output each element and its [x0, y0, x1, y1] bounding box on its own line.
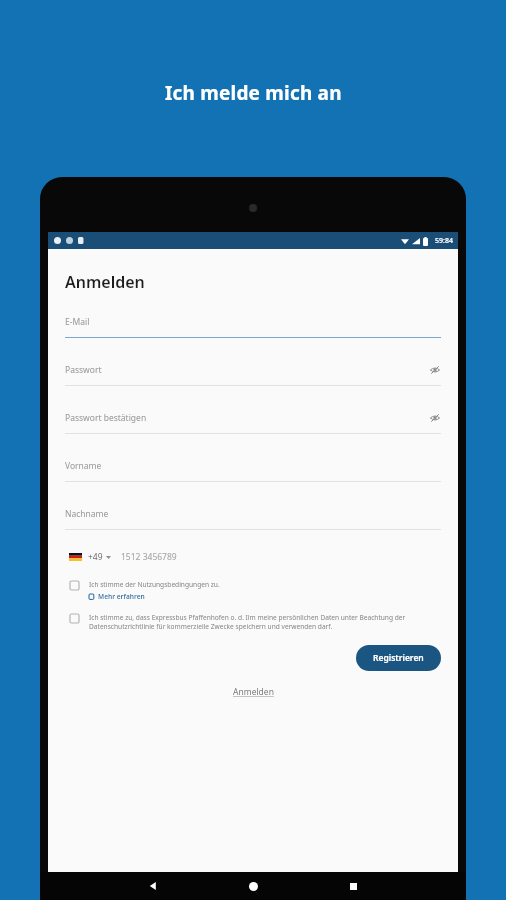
staticText: Mehr erfahren	[98, 592, 145, 601]
staticText: Anmelden	[65, 271, 145, 293]
button[interactable]: Vorname	[65, 460, 441, 482]
button[interactable]: +49	[65, 551, 441, 563]
button[interactable]: Übersicht	[303, 872, 403, 900]
staticText: Anmelden	[233, 686, 274, 698]
staticText: 59:84	[435, 236, 453, 246]
button[interactable]: Zustimmen	[65, 613, 441, 631]
button[interactable]: Zustimmen	[65, 580, 441, 601]
staticText: Passwort	[65, 364, 102, 376]
button[interactable]: Zurück	[103, 872, 203, 900]
staticText: Ich melde mich an	[165, 80, 342, 106]
staticText: Ich stimme der Nutzungsbedingungen zu.	[89, 580, 220, 589]
staticText: E-Mail	[65, 316, 90, 328]
staticText: 1512 3456789	[121, 551, 177, 563]
button[interactable]: Nachname	[65, 508, 441, 530]
button[interactable]: E-Mail	[65, 316, 441, 338]
button[interactable]: Anmelden	[227, 683, 280, 701]
button[interactable]: Registrieren	[356, 645, 441, 671]
staticText: Datenschutzrichtlinie für kommerzielle Z…	[89, 622, 333, 631]
button[interactable]: Passwort bestätigen	[65, 412, 441, 434]
other: Zustimmen	[70, 614, 79, 623]
staticText: Nachname	[65, 508, 109, 520]
staticText: Ich stimme zu, dass Expressbus Pfaffenho…	[89, 613, 406, 622]
staticText: Registrieren	[373, 652, 424, 664]
other: Passwort anzeigen	[429, 412, 441, 424]
button[interactable]: Passwort	[65, 364, 441, 386]
button[interactable]: Startseite	[203, 872, 303, 900]
staticText: Passwort bestätigen	[65, 412, 147, 424]
staticText: Vorname	[65, 460, 102, 472]
other: Zustimmen	[70, 581, 79, 590]
staticText: +49	[88, 551, 103, 563]
other: Passwort anzeigen	[429, 364, 441, 376]
